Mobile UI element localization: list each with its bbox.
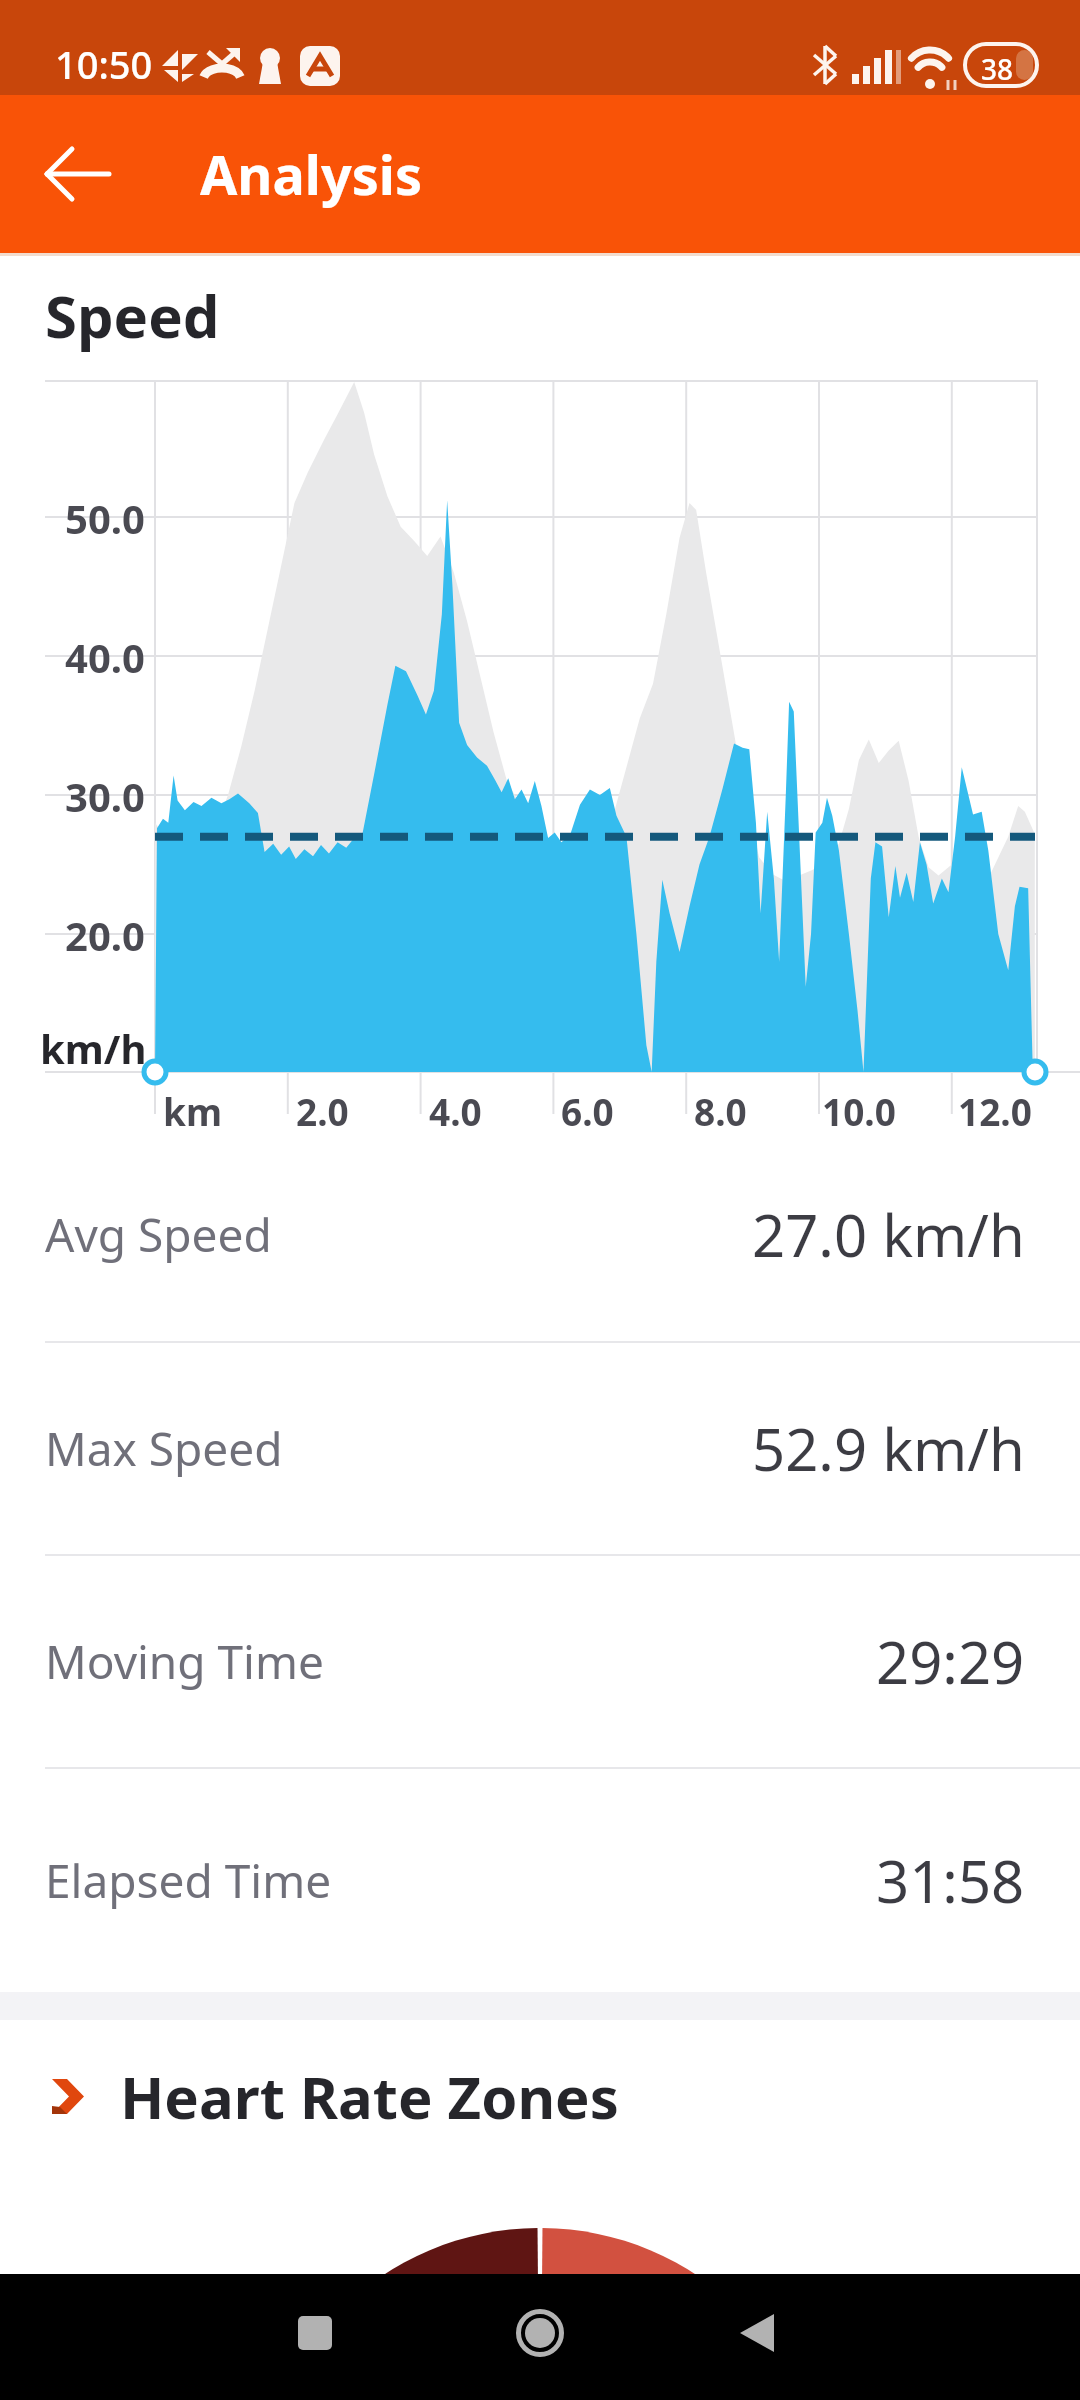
staticText: Analysis	[200, 137, 423, 211]
button[interactable]	[281, 2299, 349, 2367]
staticText: 52.9 km/h	[752, 1409, 1025, 1488]
staticText: 20.0	[65, 908, 145, 960]
button[interactable]	[723, 2299, 791, 2367]
staticText: 29:29	[876, 1622, 1025, 1701]
staticText: 12.0	[958, 1086, 1032, 1136]
staticText: Heart Rate Zones	[120, 2057, 619, 2136]
staticText: km/h	[40, 1021, 147, 1069]
button[interactable]: Max Speed	[0, 1343, 1080, 1554]
staticText: Elapsed Time	[45, 1849, 332, 1912]
button[interactable]: Moving Time	[0, 1556, 1080, 1767]
staticText: 31:58	[876, 1841, 1025, 1920]
staticText: km	[163, 1086, 223, 1136]
button[interactable]: Avg Speed	[0, 1128, 1080, 1341]
staticText: 4.0	[429, 1086, 482, 1136]
button[interactable]: Elapsed Time	[0, 1769, 1080, 1992]
staticText: 30.0	[65, 769, 145, 821]
staticText: 6.0	[561, 1086, 614, 1136]
staticText: 10.0	[822, 1086, 896, 1136]
staticText: 27.0 km/h	[752, 1195, 1025, 1274]
staticText: Speed	[45, 276, 220, 355]
staticText: 50.0	[65, 491, 145, 543]
staticText: 40.0	[65, 630, 145, 682]
staticText: 8.0	[694, 1086, 747, 1136]
staticText: Moving Time	[45, 1630, 324, 1693]
button[interactable]	[506, 2299, 574, 2367]
button[interactable]	[34, 130, 122, 218]
staticText: Max Speed	[45, 1417, 283, 1480]
staticText: 10:50	[55, 38, 153, 90]
staticText: 38	[981, 50, 1014, 88]
staticText: Avg Speed	[45, 1203, 272, 1266]
staticText: 2.0	[296, 1086, 349, 1136]
button[interactable]: Heart Rate Zones	[0, 2044, 1080, 2148]
